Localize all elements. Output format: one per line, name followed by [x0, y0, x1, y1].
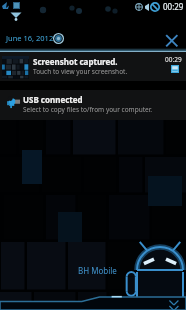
staticText: Select to copy files to/from your comput…	[23, 105, 153, 114]
button[interactable]: Screenshot captured.	[0, 52, 186, 81]
staticText: June 16, 2012	[6, 33, 54, 43]
staticText: 00:29	[165, 55, 182, 64]
staticText: BH Mobile	[78, 265, 117, 276]
staticText: Screenshot captured.	[33, 56, 118, 67]
button[interactable]: Clear all notifications	[161, 30, 183, 52]
button[interactable]: USB connected	[0, 90, 186, 120]
staticText: Touch to view your screenshot.	[33, 67, 128, 76]
staticText: 00:29	[163, 1, 184, 12]
button[interactable]: Close notification shade	[0, 293, 186, 310]
button[interactable]: Settings	[53, 33, 64, 44]
staticText: USB connected	[23, 94, 83, 105]
